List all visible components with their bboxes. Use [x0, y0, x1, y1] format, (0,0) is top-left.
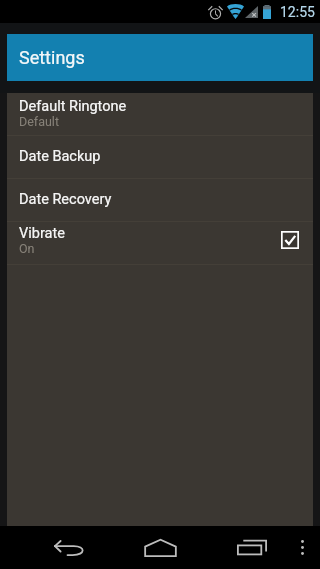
staticText: 12:55	[280, 4, 315, 20]
button[interactable]: Date Recovery	[7, 179, 313, 222]
button[interactable]: Recent apps	[206, 526, 297, 569]
button[interactable]: Default Ringtone	[7, 93, 313, 136]
button[interactable]: Vibrate	[7, 222, 313, 265]
button[interactable]: More options	[297, 526, 308, 569]
button[interactable]: Date Backup	[7, 136, 313, 179]
button[interactable]: Settings	[7, 34, 313, 81]
staticText: Date Backup	[19, 148, 101, 165]
staticText: Default	[19, 114, 59, 129]
staticText: On	[19, 241, 35, 256]
staticText: Date Recovery	[19, 191, 112, 208]
staticText: Vibrate	[19, 225, 65, 242]
button[interactable]: Back	[23, 526, 114, 569]
button[interactable]: Home	[114, 526, 206, 569]
staticText: Default Ringtone	[19, 98, 127, 115]
staticText: Settings	[19, 47, 85, 68]
